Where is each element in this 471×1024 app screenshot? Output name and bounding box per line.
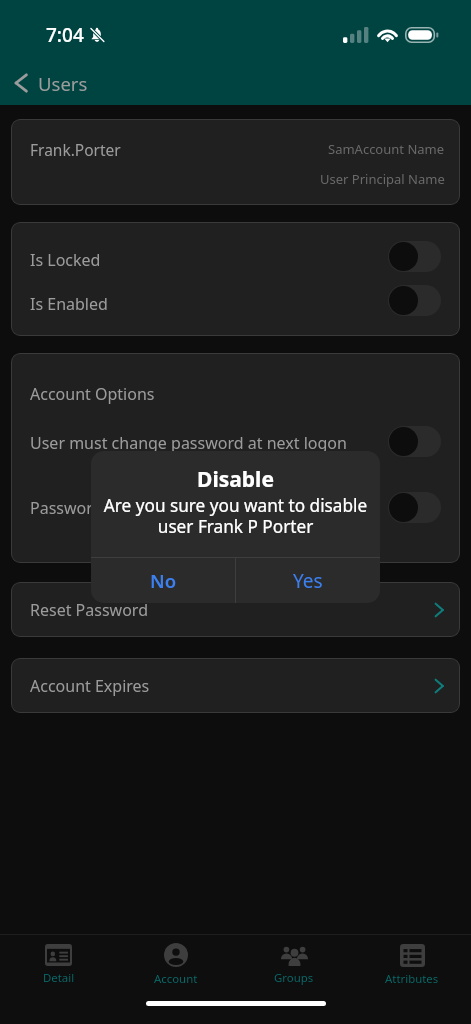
staticText: Groups: [274, 970, 314, 986]
staticText: 7:04: [46, 22, 84, 48]
button[interactable]: Toggle: [388, 285, 441, 316]
staticText: Detail: [43, 970, 75, 986]
staticText: Account Expires: [30, 675, 150, 697]
staticText: Yes: [293, 568, 323, 594]
button[interactable]: Detail: [0, 937, 117, 993]
staticText: Frank.Porter: [30, 139, 121, 160]
button[interactable]: Toggle: [388, 492, 441, 523]
staticText: Account: [154, 971, 198, 987]
button[interactable]: Attributes: [353, 937, 471, 993]
staticText: Disable: [197, 465, 274, 494]
button[interactable]: Toggle: [388, 426, 441, 457]
staticText: User Principal Name: [320, 170, 445, 188]
staticText: Is Locked: [30, 249, 101, 271]
button[interactable]: Users: [0, 62, 100, 104]
button[interactable]: Toggle: [388, 241, 441, 272]
button[interactable]: Yes: [236, 558, 380, 603]
button[interactable]: Account Expires: [11, 658, 460, 713]
staticText: Are you sure you want to disable user Fr…: [99, 494, 372, 538]
staticText: Account Options: [30, 383, 155, 405]
staticText: SamAccount Name: [328, 140, 445, 158]
staticText: Users: [38, 71, 88, 96]
staticText: Reset Password: [30, 599, 148, 621]
button[interactable]: Account: [117, 937, 235, 993]
button[interactable]: No: [91, 558, 235, 603]
button[interactable]: Reset Password: [11, 582, 460, 637]
staticText: User must change password at next logon: [30, 432, 347, 454]
staticText: Is Enabled: [30, 293, 108, 315]
staticText: Password Never Expires: [30, 497, 210, 519]
staticText: No: [150, 568, 177, 593]
button[interactable]: Groups: [235, 937, 353, 993]
staticText: Attributes: [385, 971, 439, 987]
